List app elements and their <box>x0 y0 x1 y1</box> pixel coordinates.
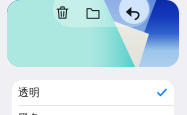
button[interactable]: Move to folder <box>78 0 108 28</box>
button[interactable]: 透明 <box>12 80 174 105</box>
button[interactable]: Delete <box>47 0 77 27</box>
staticText: 透明 <box>18 86 40 99</box>
button[interactable]: 黑色 <box>12 106 174 115</box>
button[interactable]: Undo <box>118 0 148 28</box>
staticText: 黑色 <box>18 111 40 115</box>
